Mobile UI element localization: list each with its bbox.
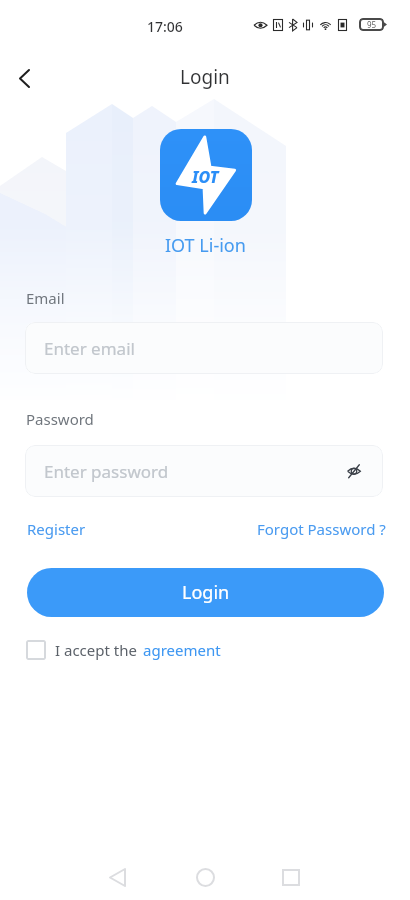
- button[interactable]: Login: [27, 568, 384, 617]
- button[interactable]: Recents: [267, 853, 315, 900]
- staticText: agreement: [143, 640, 221, 660]
- button[interactable]: Toggle password visibility: [341, 458, 367, 484]
- staticText: Forgot Password ?: [257, 519, 386, 539]
- staticText: Login: [180, 64, 230, 90]
- staticText: I accept the: [55, 640, 137, 660]
- button[interactable]: Accept agreement: [26, 640, 46, 660]
- staticText: 17:06: [147, 17, 183, 36]
- button[interactable]: agreement: [143, 640, 221, 660]
- staticText: IOT Li-ion: [165, 233, 246, 258]
- staticText: Login: [182, 580, 230, 605]
- staticText: Register: [27, 519, 86, 539]
- button[interactable]: Back: [93, 853, 141, 900]
- button[interactable]: Enter email: [25, 322, 383, 374]
- button[interactable]: Enter password: [25, 445, 383, 497]
- staticText: Email: [26, 288, 65, 308]
- button[interactable]: Back: [2, 56, 46, 100]
- staticText: Enter email: [44, 337, 135, 360]
- staticText: Password: [26, 409, 94, 429]
- button[interactable]: Forgot Password ?: [257, 519, 386, 539]
- staticText: IOT: [192, 166, 219, 188]
- staticText: 95: [367, 19, 377, 30]
- button[interactable]: Home: [181, 853, 229, 900]
- button[interactable]: Register: [27, 519, 86, 539]
- staticText: Enter password: [44, 460, 169, 483]
